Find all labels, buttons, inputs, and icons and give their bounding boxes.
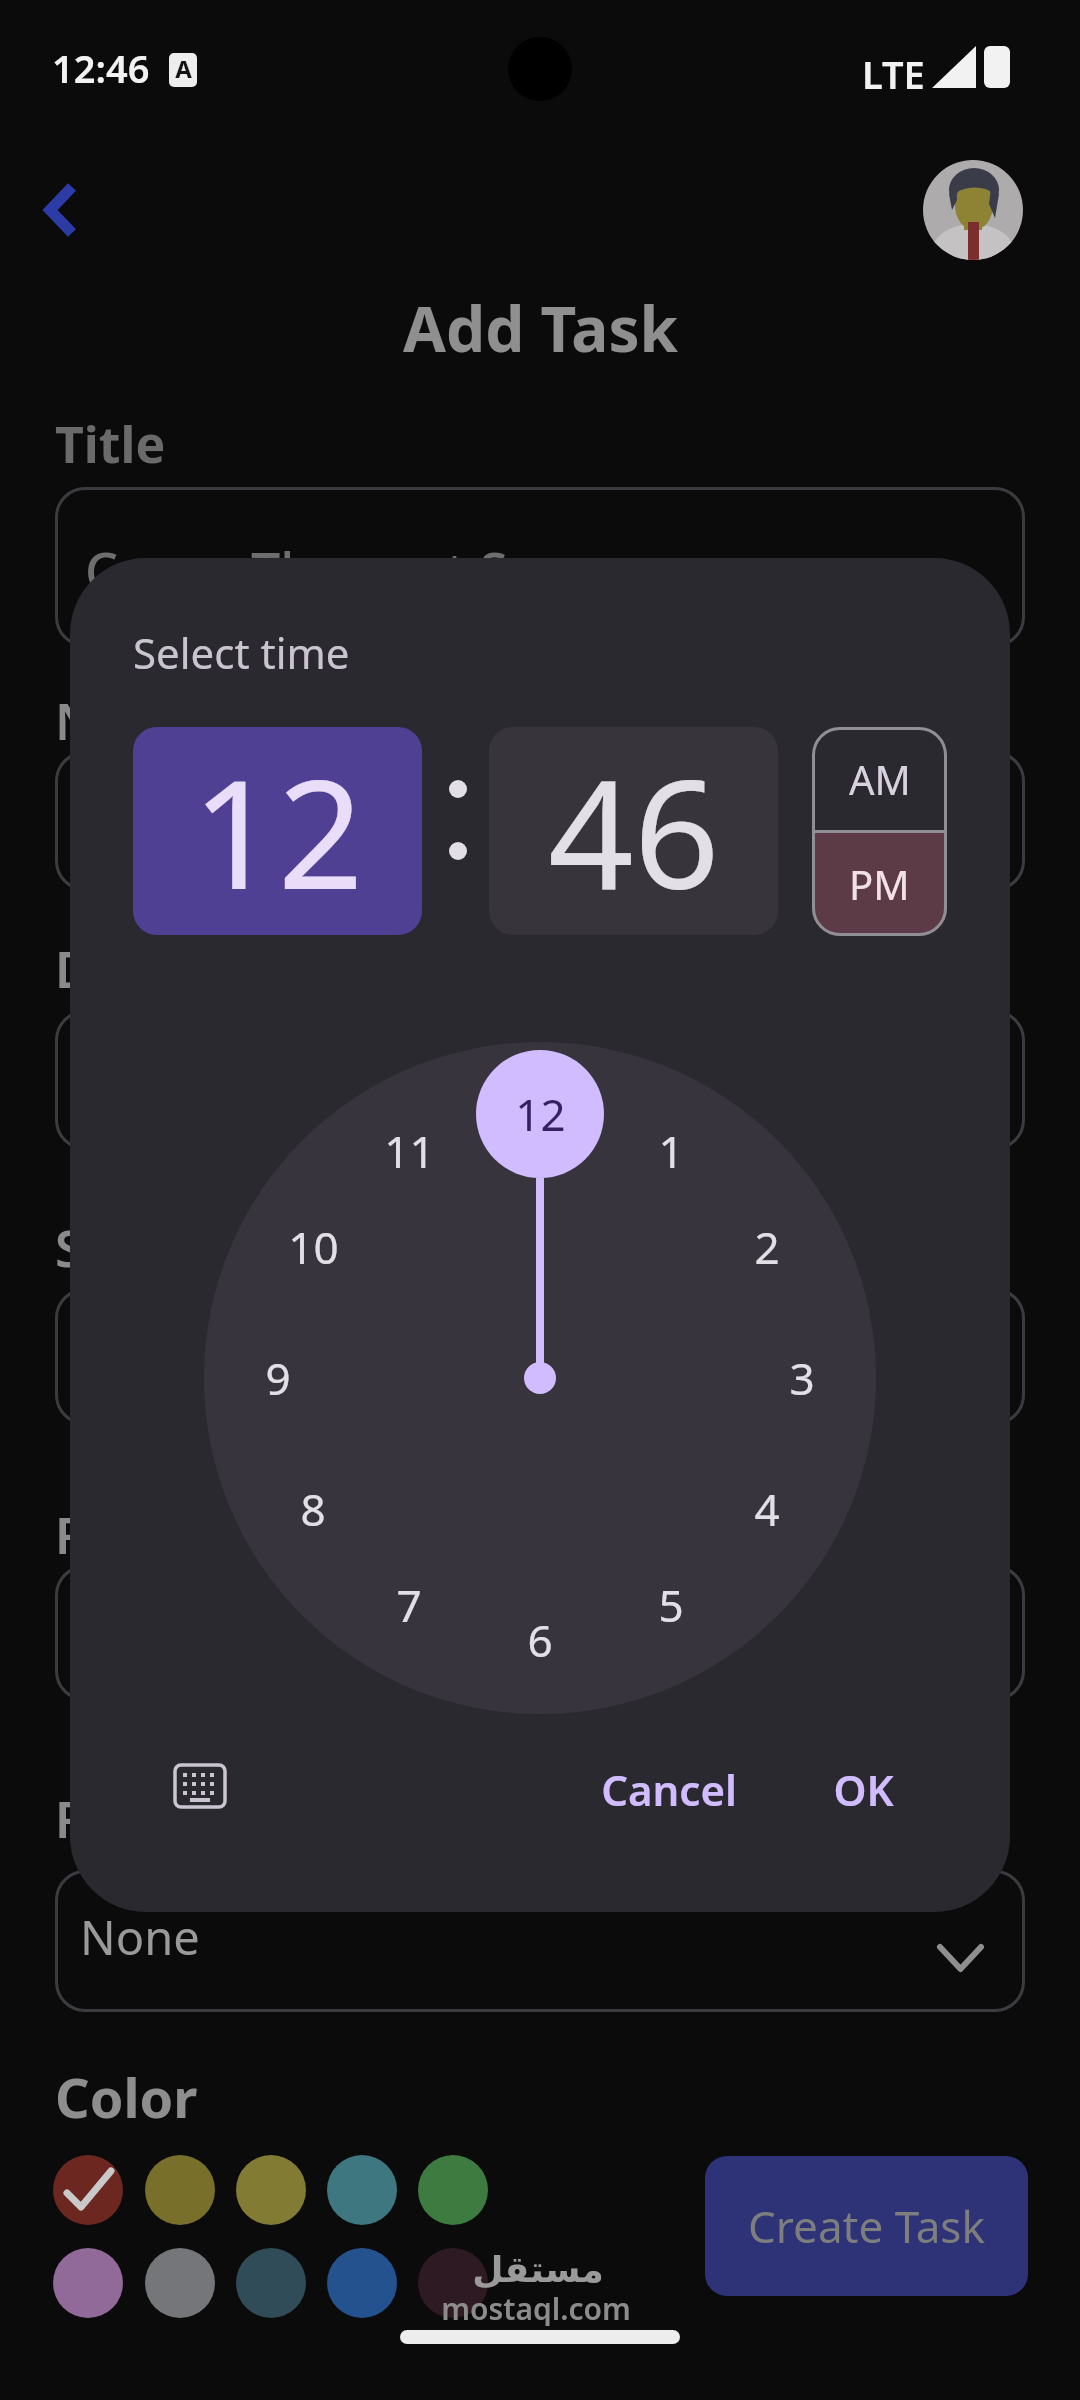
button[interactable] xyxy=(55,487,1025,647)
staticText: Add Task xyxy=(403,286,678,370)
staticText: 12:46 xyxy=(52,42,150,94)
button[interactable]: 46 xyxy=(489,727,778,935)
staticText: OK xyxy=(833,1761,894,1818)
button[interactable] xyxy=(42,183,78,237)
button[interactable] xyxy=(418,2155,488,2225)
staticText: PM xyxy=(849,857,910,911)
staticText: AM xyxy=(849,752,911,806)
staticText: 2 xyxy=(754,1217,780,1277)
staticText: 46 xyxy=(548,729,720,933)
button[interactable] xyxy=(155,1744,245,1828)
staticText: 11 xyxy=(384,1121,435,1181)
button[interactable] xyxy=(145,2155,215,2225)
staticText: Color xyxy=(55,2060,198,2134)
staticText: A xyxy=(175,52,192,85)
staticText: Cancel xyxy=(601,1761,737,1818)
staticText: 1 xyxy=(658,1121,684,1181)
button[interactable] xyxy=(327,2155,397,2225)
button[interactable]: AM xyxy=(812,727,947,831)
staticText: 5 xyxy=(658,1575,684,1635)
button[interactable]: Cancel xyxy=(574,1759,764,1819)
staticText: 12 xyxy=(192,729,364,933)
staticText: Name xyxy=(55,687,202,755)
button[interactable] xyxy=(923,160,1023,260)
button[interactable]: OK xyxy=(803,1759,923,1819)
button[interactable]: 12 xyxy=(133,727,422,935)
staticText: Select time xyxy=(133,624,350,681)
staticText: Repeat xyxy=(55,1785,227,1853)
staticText: 4 xyxy=(754,1479,780,1539)
button[interactable] xyxy=(53,2248,123,2318)
staticText: None xyxy=(80,1905,200,1969)
staticText: مستقل xyxy=(472,2249,604,2291)
button[interactable] xyxy=(236,2248,306,2318)
staticText: mostaql.com xyxy=(441,2288,631,2326)
staticText: Start xyxy=(55,1214,175,1282)
staticText: 6 xyxy=(527,1610,553,1670)
button[interactable] xyxy=(145,2248,215,2318)
staticText: 9 xyxy=(265,1348,291,1408)
button[interactable] xyxy=(327,2248,397,2318)
staticText: 3 xyxy=(789,1348,815,1408)
button[interactable]: PM xyxy=(812,832,947,936)
staticText: Title xyxy=(55,410,166,478)
staticText: 7 xyxy=(396,1575,422,1635)
staticText: 8 xyxy=(300,1479,326,1539)
button[interactable] xyxy=(236,2155,306,2225)
staticText: LTE xyxy=(862,48,925,100)
staticText: 10 xyxy=(288,1217,339,1277)
button[interactable] xyxy=(418,2248,488,2318)
button[interactable] xyxy=(55,1870,1025,2012)
staticText: Create Task xyxy=(748,2196,985,2256)
staticText: 12 xyxy=(515,1084,566,1144)
staticText: Remind xyxy=(55,1501,242,1569)
staticText: Canva The next Song xyxy=(85,535,605,606)
button[interactable] xyxy=(53,2155,123,2225)
button[interactable]: Create Task xyxy=(705,2156,1028,2296)
staticText: Date xyxy=(55,935,171,1003)
